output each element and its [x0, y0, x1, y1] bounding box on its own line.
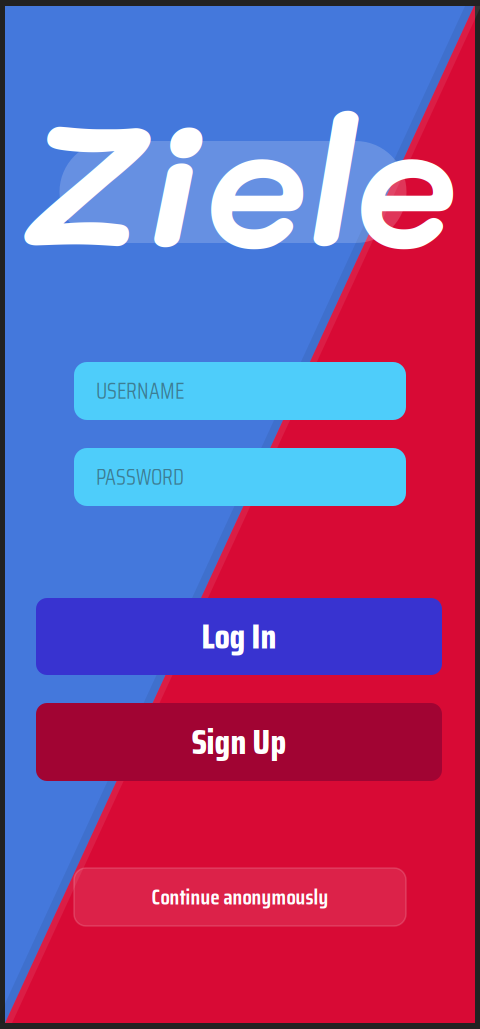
staticText: Ziele	[22, 66, 457, 292]
button[interactable]: Log In	[36, 598, 442, 675]
staticText: Sign Up	[191, 715, 286, 769]
button[interactable]: Sign Up	[36, 703, 442, 781]
staticText: USERNAME	[96, 374, 184, 408]
staticText: PASSWORD	[96, 460, 184, 494]
button[interactable]: Continue anonymously	[74, 868, 406, 926]
staticText: Continue anonymously	[151, 880, 328, 914]
staticText: Log In	[201, 609, 276, 664]
